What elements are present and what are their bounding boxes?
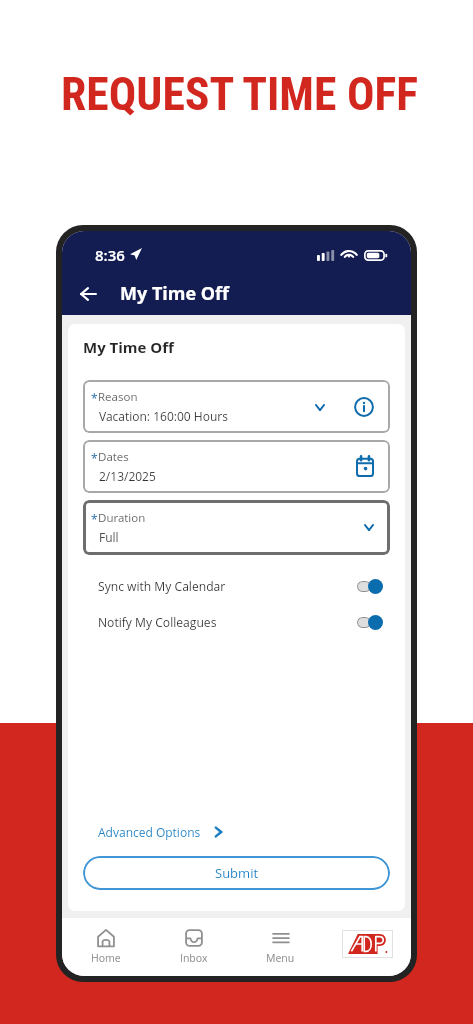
staticText: Advanced Options bbox=[98, 824, 201, 840]
staticText: Home bbox=[91, 951, 121, 965]
other: Signal bbox=[317, 250, 334, 261]
staticText: 2/13/2025 bbox=[99, 468, 156, 484]
staticText: Full bbox=[99, 529, 119, 545]
other: Battery bbox=[364, 250, 387, 261]
staticText: 8:36 bbox=[95, 245, 125, 265]
button[interactable]: * bbox=[83, 380, 390, 433]
staticText: * bbox=[91, 390, 98, 406]
staticText: Inbox bbox=[180, 951, 208, 965]
staticText: Submit bbox=[215, 864, 259, 882]
button[interactable]: Menu bbox=[237, 918, 324, 976]
staticText: * bbox=[91, 511, 98, 527]
staticText: Menu bbox=[266, 951, 295, 965]
staticText: My Time Off bbox=[83, 337, 174, 357]
staticText: Sync with My Calendar bbox=[98, 578, 226, 594]
button[interactable]: * bbox=[83, 440, 390, 493]
other: Information bbox=[354, 397, 374, 417]
staticText: * bbox=[91, 450, 98, 466]
staticText: Vacation: 160:00 Hours bbox=[99, 408, 228, 424]
button[interactable]: Sync with My Calendar bbox=[83, 568, 390, 604]
button[interactable]: Submit bbox=[83, 856, 390, 890]
staticText: REQUEST TIME OFF bbox=[3, 68, 473, 122]
button[interactable]: * bbox=[83, 500, 390, 555]
button[interactable]: ADP bbox=[342, 930, 393, 958]
button[interactable]: Inbox bbox=[150, 918, 237, 976]
staticText: Notify My Colleagues bbox=[98, 614, 217, 630]
button[interactable]: Home bbox=[62, 918, 150, 976]
staticText: Duration bbox=[98, 510, 146, 526]
button[interactable]: Notify My Colleagues bbox=[83, 604, 390, 640]
other: Pick date bbox=[356, 456, 374, 477]
staticText: Reason bbox=[98, 389, 138, 405]
staticText: My Time Off bbox=[120, 281, 230, 306]
other: Wi-Fi bbox=[341, 247, 357, 259]
button[interactable]: Back bbox=[72, 278, 104, 310]
staticText: Dates bbox=[98, 449, 129, 465]
button[interactable]: Advanced Options bbox=[98, 820, 222, 844]
